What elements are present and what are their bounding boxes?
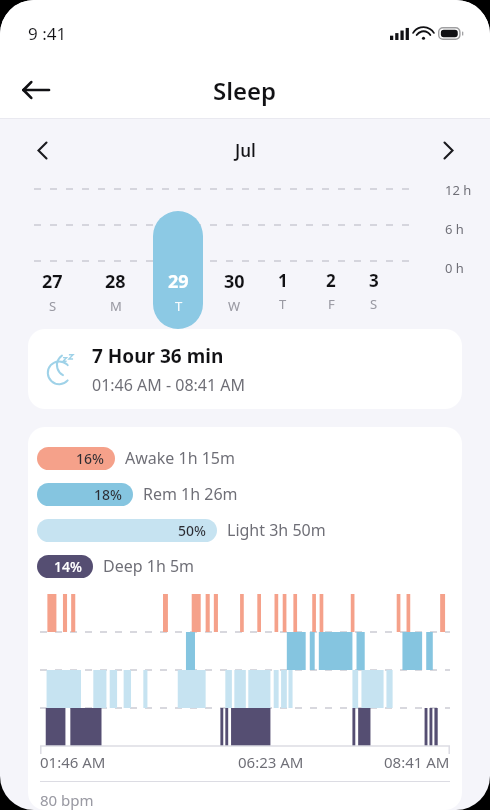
staticText: 12 h	[445, 181, 472, 199]
staticText: 2	[326, 269, 336, 292]
button[interactable]: 2	[313, 269, 349, 313]
button[interactable]: 14%	[37, 548, 462, 584]
staticText: 80 bpm	[40, 790, 94, 810]
staticText: Light 3h 50m	[227, 519, 326, 541]
button[interactable]: 28	[97, 269, 133, 315]
staticText: Jul	[235, 139, 256, 162]
staticText: 06:23 AM	[238, 752, 304, 772]
staticText: S	[370, 295, 378, 313]
button[interactable]: 1	[265, 269, 301, 313]
staticText: 27	[42, 269, 63, 294]
staticText: 28	[105, 269, 126, 294]
staticText: 16%	[76, 449, 104, 468]
staticText: 3	[369, 269, 379, 292]
button[interactable]: 50%	[37, 512, 462, 548]
button[interactable]: Previous month	[22, 130, 62, 170]
button[interactable]: 16%	[37, 440, 462, 476]
staticText: Deep 1h 5m	[103, 555, 195, 577]
staticText: 29	[168, 269, 189, 294]
staticText: S	[49, 297, 57, 315]
staticText: 7 Hour 36 min	[92, 343, 224, 369]
staticText: 08:41 AM	[384, 752, 450, 772]
staticText: 14%	[54, 557, 82, 576]
button[interactable]: 29	[160, 269, 196, 315]
staticText: F	[328, 295, 335, 313]
staticText: 01:46 AM	[40, 752, 106, 772]
staticText: W	[228, 297, 241, 315]
button[interactable]: 27	[34, 269, 70, 315]
button[interactable]: Back	[12, 66, 60, 114]
staticText: 30	[224, 269, 245, 294]
button[interactable]: 30	[216, 269, 252, 315]
staticText: 50%	[178, 521, 206, 540]
staticText: T	[175, 297, 183, 315]
staticText: Awake 1h 15m	[125, 447, 235, 469]
button[interactable]: 18%	[37, 476, 462, 512]
staticText: M	[110, 297, 122, 315]
staticText: 01:46 AM - 08:41 AM	[92, 374, 246, 396]
staticText: 1	[278, 269, 288, 292]
staticText: 9 :41	[28, 22, 67, 45]
button[interactable]: 3	[356, 269, 392, 313]
staticText: T	[279, 295, 287, 313]
staticText: Rem 1h 26m	[143, 483, 238, 505]
button[interactable]: 7 Hour 36 min	[28, 329, 462, 409]
staticText: 0 h	[445, 259, 464, 277]
staticText: 18%	[94, 485, 122, 504]
staticText: 6 h	[445, 220, 464, 238]
staticText: Sleep	[213, 74, 277, 107]
button[interactable]: Next month	[428, 130, 468, 170]
